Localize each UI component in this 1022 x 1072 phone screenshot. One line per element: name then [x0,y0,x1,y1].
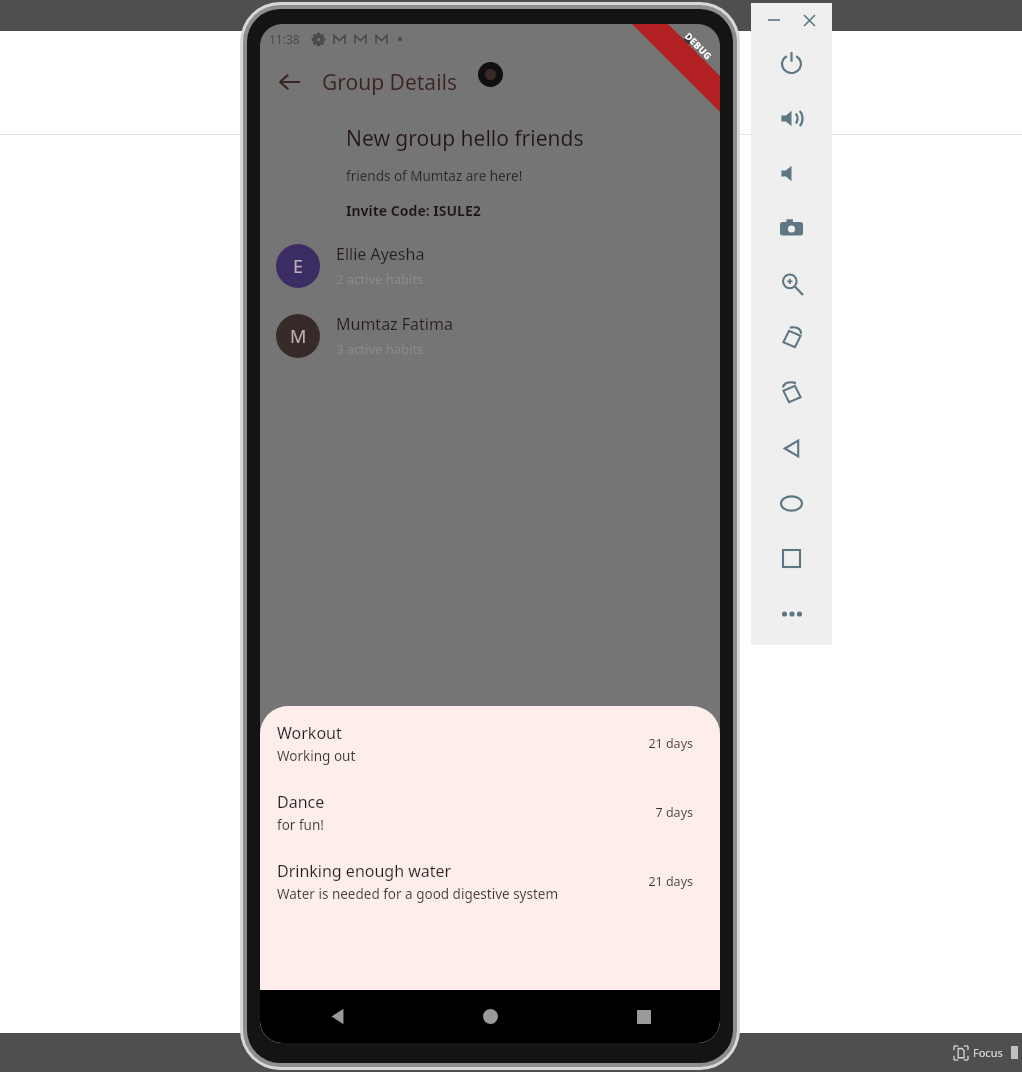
button[interactable]: Back [266,58,314,106]
staticText: Invite Code: ISULE2 [346,201,481,220]
button[interactable]: Volume down [751,146,832,201]
staticText: New group hello friends [346,124,584,153]
staticText: DEBUG [683,30,715,62]
button[interactable]: Overview [751,531,832,586]
button[interactable]: M [260,313,720,358]
button[interactable]: Home [414,990,567,1043]
staticText: 2 active habits [336,270,424,288]
button[interactable]: Rotate right [751,366,832,421]
staticText: Ellie Ayesha [336,243,425,265]
button[interactable]: Close [796,7,822,33]
button[interactable]: Drinking enough water [260,860,720,903]
staticText: 21 days [648,735,693,752]
staticText: Group Details [322,68,458,97]
button[interactable]: Back [260,990,414,1043]
button[interactable]: Workout [260,722,720,765]
staticText: 3 active habits [336,340,424,358]
staticText: Focus [973,1045,1003,1060]
staticText: Workout [277,722,342,744]
staticText: for fun! [277,816,324,834]
staticText: Dance [277,791,325,813]
button[interactable]: More [751,586,832,641]
staticText: 21 days [648,873,693,890]
staticText: Drinking enough water [277,860,452,882]
button[interactable]: Back [751,421,832,476]
staticText: Water is needed for a good digestive sys… [277,885,559,903]
button[interactable]: Screenshot [751,201,832,256]
staticText: M [290,324,307,349]
staticText: E [293,254,304,279]
staticText: friends of Mumtaz are here! [346,167,523,185]
button[interactable]: E [260,243,720,288]
button[interactable]: Zoom [751,256,832,311]
button[interactable]: Recent apps [567,990,720,1043]
staticText: 7 days [655,804,693,821]
button[interactable]: Volume up [751,91,832,146]
button[interactable]: Minimize [761,7,787,33]
button[interactable]: Home [751,476,832,531]
staticText: Working out [277,747,356,765]
staticText: 11:38 [269,31,300,47]
button[interactable]: Dance [260,791,720,834]
staticText: Mumtaz Fatima [336,313,453,335]
button[interactable]: Rotate left [751,311,832,366]
button[interactable]: Power [751,36,832,91]
